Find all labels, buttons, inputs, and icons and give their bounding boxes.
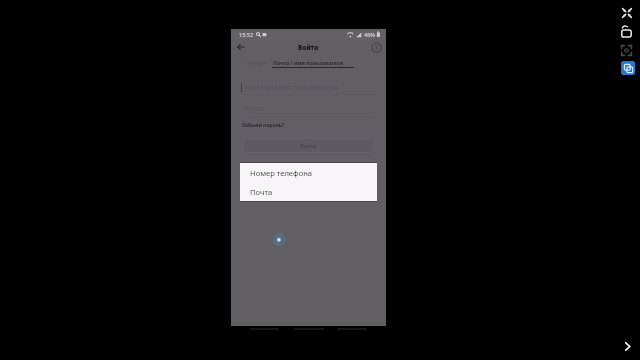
button[interactable]: Номер телефона [240, 163, 377, 182]
button[interactable]: Войти [243, 138, 374, 153]
button[interactable]: Help [369, 40, 383, 54]
button[interactable]: Почта [240, 182, 377, 201]
staticText: Войти [298, 43, 319, 52]
staticText: 46% [364, 31, 375, 38]
staticText: Номер телефона [250, 168, 313, 178]
button[interactable]: Почта / имя пользователя [273, 56, 344, 68]
staticText: Войти [300, 142, 317, 149]
button[interactable]: Fullscreen [617, 41, 635, 59]
button[interactable]: Rotate [617, 23, 635, 41]
staticText: ? [375, 43, 378, 51]
staticText: 15:52 [239, 31, 254, 38]
button[interactable]: Back [234, 40, 248, 54]
staticText: Забыли пароль? [242, 122, 285, 129]
button[interactable]: Collapse [618, 4, 636, 22]
button[interactable]: Screenshot [621, 61, 635, 75]
button[interactable]: Next [619, 338, 635, 354]
staticText: Почта / имя пользователя [273, 59, 344, 66]
button[interactable]: Забыли пароль? [242, 121, 285, 129]
staticText: Почта [250, 187, 273, 197]
